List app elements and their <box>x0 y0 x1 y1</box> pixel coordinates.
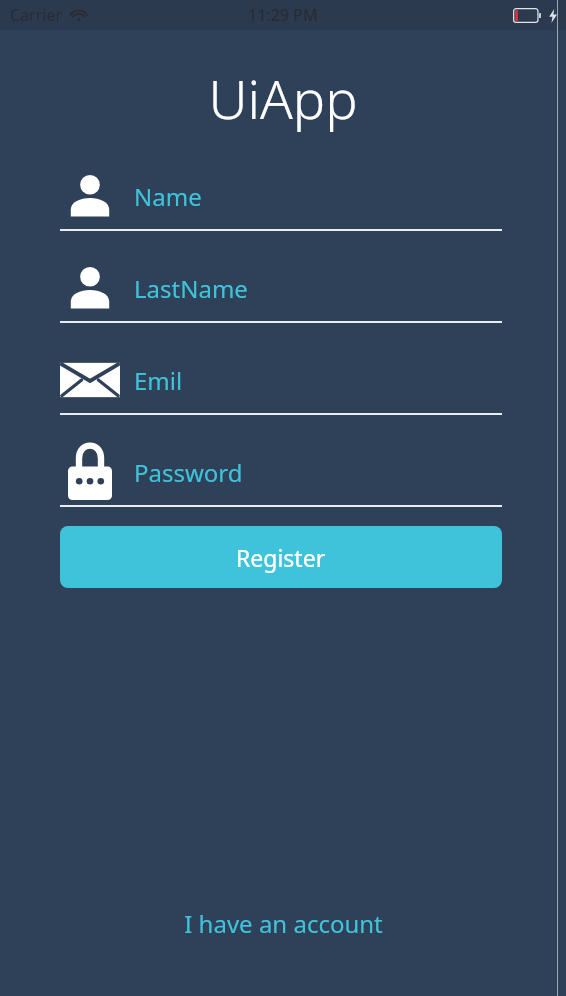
staticText: 11:29 PM <box>248 4 318 26</box>
button[interactable]: I have an account <box>0 907 566 940</box>
staticText: I have an account <box>184 907 383 940</box>
staticText: Password <box>134 456 243 489</box>
staticText: LastName <box>134 272 248 305</box>
staticText: UiApp <box>0 61 566 135</box>
button[interactable]: Register <box>60 526 502 588</box>
button[interactable]: Password <box>60 439 502 507</box>
staticText: Name <box>134 180 202 213</box>
button[interactable]: Name <box>60 163 502 231</box>
staticText: Carrier <box>10 4 63 26</box>
staticText: Register <box>236 542 326 573</box>
staticText: Emil <box>134 364 183 397</box>
button[interactable]: Emil <box>60 347 502 415</box>
button[interactable]: LastName <box>60 255 502 323</box>
